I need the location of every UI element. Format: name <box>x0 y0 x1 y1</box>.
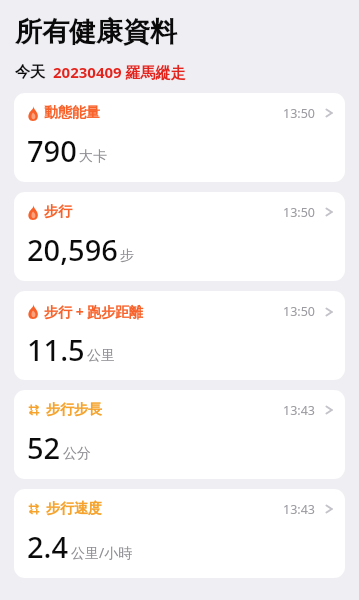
staticText: 公里/小時 <box>71 543 133 562</box>
staticText: 步行速度 <box>46 500 102 518</box>
button[interactable]: 動態能量 <box>14 93 345 182</box>
staticText: 52 <box>27 428 61 467</box>
staticText: 13:50 <box>283 303 315 320</box>
staticText: 公里 <box>87 347 115 365</box>
staticText: 790 <box>27 131 77 170</box>
other: Show details <box>325 403 333 417</box>
other: Show details <box>325 305 333 319</box>
staticText: 步行步長 <box>46 401 102 419</box>
other: Show details <box>325 205 333 219</box>
staticText: 所有健康資料 <box>15 15 177 49</box>
staticText: 步行 + 跑步距離 <box>44 302 144 321</box>
other: Show details <box>325 502 333 516</box>
button[interactable]: 步行 + 跑步距離 <box>14 291 345 380</box>
other: Show details <box>325 106 333 120</box>
staticText: 動態能量 <box>44 104 100 122</box>
staticText: 今天 <box>15 63 45 82</box>
staticText: 13:50 <box>283 204 315 221</box>
staticText: 2.4 <box>27 527 69 566</box>
staticText: 步 <box>120 247 134 265</box>
staticText: 13:43 <box>283 402 315 419</box>
staticText: 步行 <box>44 203 72 221</box>
staticText: 20,596 <box>27 230 118 269</box>
staticText: 13:50 <box>283 105 315 122</box>
staticText: 公分 <box>63 445 91 463</box>
staticText: 大卡 <box>79 148 107 166</box>
button[interactable]: 步行速度 <box>14 489 345 578</box>
staticText: 11.5 <box>27 330 85 369</box>
staticText: 20230409 羅馬縱走 <box>53 62 186 82</box>
button[interactable]: 步行 <box>14 192 345 281</box>
staticText: 13:43 <box>283 501 315 518</box>
button[interactable]: 步行步長 <box>14 390 345 479</box>
